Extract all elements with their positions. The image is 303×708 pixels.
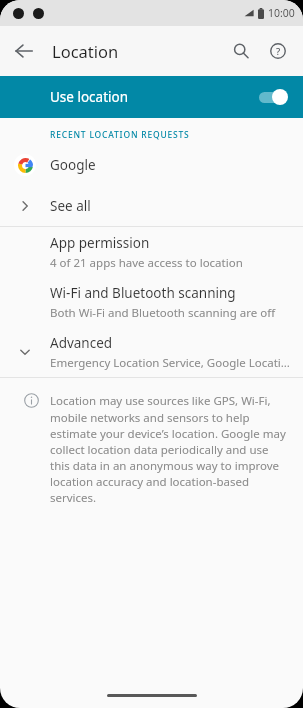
staticText: App permission bbox=[50, 234, 150, 252]
button[interactable]: App permission bbox=[0, 227, 303, 277]
button[interactable]: Advanced bbox=[0, 327, 303, 377]
button[interactable]: Help bbox=[260, 33, 296, 69]
button[interactable]: Search bbox=[223, 33, 259, 69]
staticText: Use location bbox=[50, 88, 256, 106]
button[interactable]: Back bbox=[6, 33, 42, 69]
staticText: ? bbox=[276, 45, 281, 58]
staticText: Emergency Location Service, Google Locat… bbox=[50, 355, 293, 371]
staticText: RECENT LOCATION REQUESTS bbox=[50, 129, 190, 141]
staticText: See all bbox=[50, 197, 91, 215]
staticText: Google bbox=[50, 156, 96, 174]
staticText: Location bbox=[52, 40, 119, 62]
staticText: Location may use sources like GPS, Wi-Fi… bbox=[50, 393, 288, 505]
staticText: Wi-Fi and Bluetooth scanning bbox=[50, 284, 236, 302]
button[interactable]: Use location bbox=[0, 76, 303, 118]
button[interactable]: Google bbox=[0, 144, 303, 186]
staticText: Advanced bbox=[50, 334, 113, 352]
staticText: 10:00 bbox=[268, 6, 295, 20]
button[interactable]: Wi-Fi and Bluetooth scanning bbox=[0, 277, 303, 327]
staticText: 4 of 21 apps have access to location bbox=[50, 255, 243, 271]
button[interactable]: See all bbox=[0, 186, 303, 226]
staticText: Both Wi-Fi and Bluetooth scanning are of… bbox=[50, 305, 276, 321]
